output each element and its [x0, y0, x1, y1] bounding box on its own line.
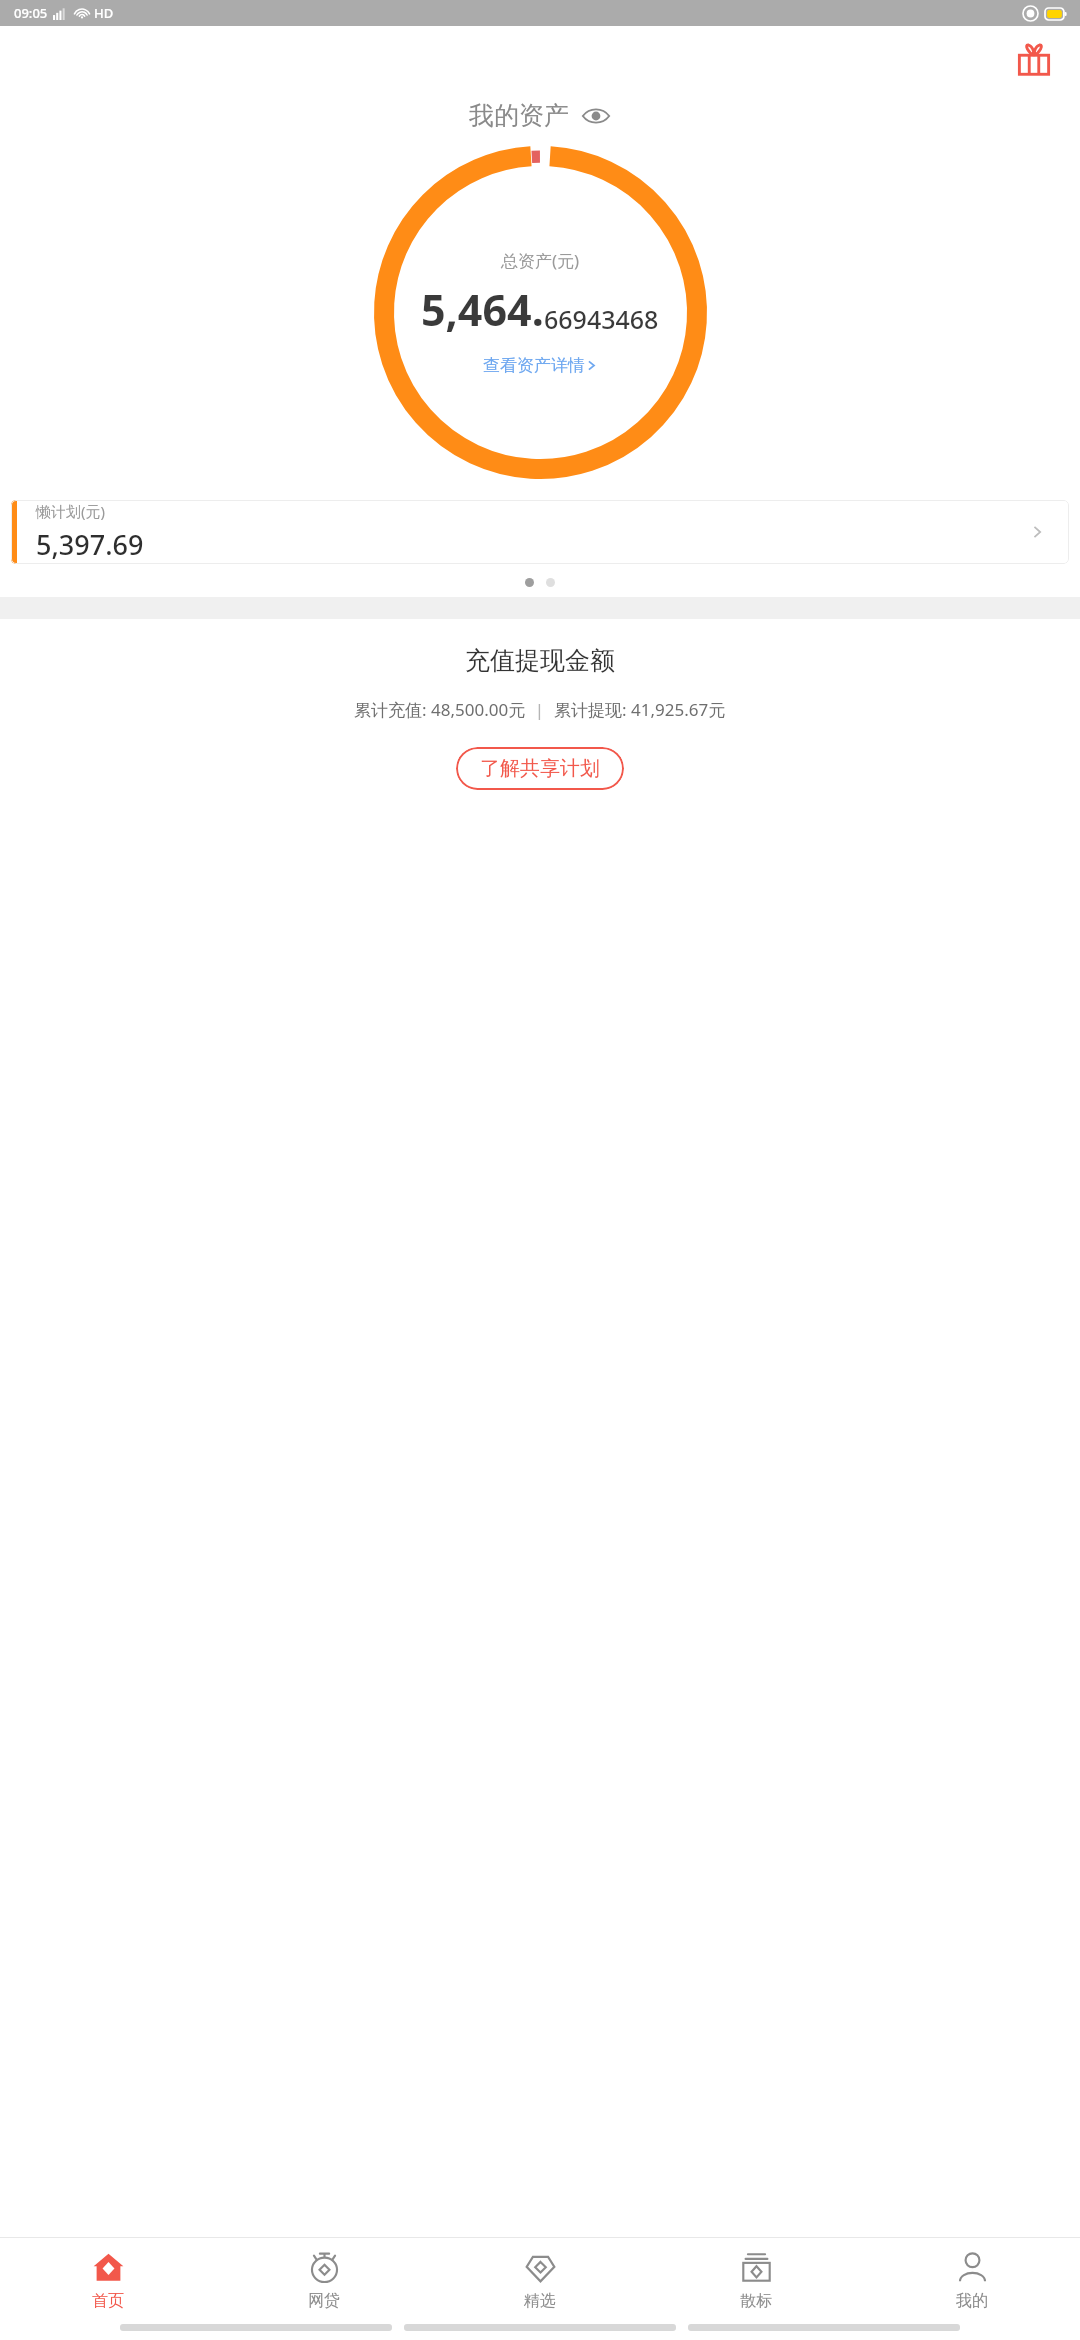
staticText: 我的: [956, 2291, 988, 2311]
button[interactable]: 我的: [864, 2238, 1080, 2324]
staticText: 09:05: [14, 4, 48, 22]
staticText: HD: [94, 4, 114, 22]
button[interactable]: Gifts: [1008, 34, 1060, 86]
staticText: 精选: [524, 2291, 556, 2311]
button[interactable]: 查看资产详情: [483, 355, 598, 376]
button[interactable]: 精选: [432, 2238, 648, 2324]
staticText: 5,464.: [421, 280, 544, 339]
staticText: 首页: [92, 2291, 124, 2311]
button[interactable]: Toggle visibility: [581, 105, 611, 127]
staticText: 查看资产详情: [483, 355, 585, 376]
button[interactable]: 懒计划(元): [11, 500, 1069, 564]
staticText: 累计提现: 41,925.67元: [554, 698, 726, 721]
staticText: 懒计划(元): [36, 501, 106, 521]
staticText: 我的资产: [469, 100, 569, 131]
button[interactable]: 网贷: [216, 2238, 432, 2324]
staticText: 66943468: [544, 302, 659, 336]
staticText: 累计充值: 48,500.00元: [354, 698, 526, 721]
staticText: 总资产(元): [501, 249, 580, 272]
staticText: 充值提现金额: [465, 645, 615, 676]
button[interactable]: 了解共享计划: [456, 747, 624, 790]
staticText: 网贷: [308, 2291, 340, 2311]
staticText: |: [526, 698, 554, 721]
staticText: 5,397.69: [36, 526, 144, 563]
staticText: 散标: [740, 2291, 772, 2311]
button[interactable]: 首页: [0, 2238, 216, 2324]
button[interactable]: 散标: [648, 2238, 864, 2324]
staticText: 了解共享计划: [480, 756, 600, 781]
